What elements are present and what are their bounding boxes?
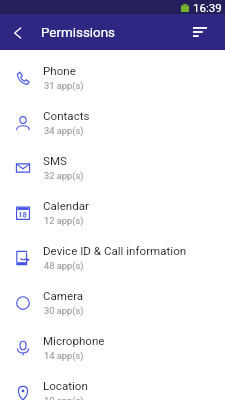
staticText: 10 app(s) [44,395,84,400]
staticText: SMS [43,154,67,168]
staticText: Permissions [41,25,116,41]
staticText: Microphone [43,334,105,348]
staticText: 12 app(s) [44,215,84,226]
staticText: Device ID & Call information [43,244,187,258]
button[interactable]: Camera [0,280,225,325]
button[interactable]: Location [0,370,225,400]
staticText: 34 app(s) [44,125,84,136]
button[interactable]: Back [6,21,30,45]
staticText: 48 app(s) [44,260,84,271]
staticText: Location [43,379,88,393]
staticText: Contacts [43,109,90,123]
button[interactable]: Calendar [0,190,225,235]
button[interactable]: SMS [0,145,225,190]
button[interactable]: Contacts [0,100,225,145]
button[interactable]: Sort [190,22,210,42]
staticText: 32 app(s) [44,170,84,181]
staticText: 14 app(s) [44,350,84,361]
staticText: Calendar [43,199,89,213]
staticText: 30 app(s) [44,305,84,316]
staticText: 31 app(s) [44,80,84,91]
staticText: Phone [43,64,76,78]
staticText: 16:39 [193,1,222,14]
button[interactable]: Microphone [0,325,225,370]
button[interactable]: Device ID & Call information [0,235,225,280]
staticText: Camera [43,289,84,303]
button[interactable]: Phone [0,55,225,100]
